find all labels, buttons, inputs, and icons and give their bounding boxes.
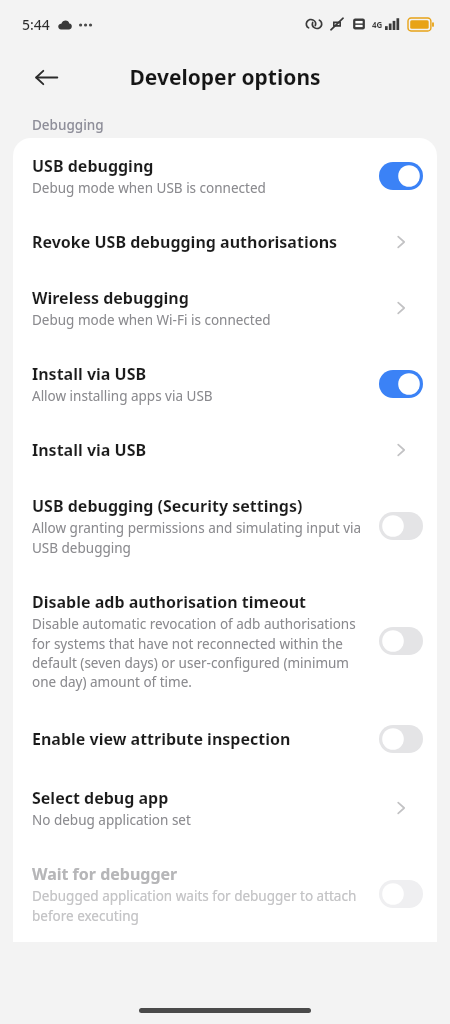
staticText: No debug application set <box>32 811 191 829</box>
staticText: Debug mode when Wi-Fi is connected <box>32 311 271 329</box>
staticText: 5:44 <box>22 15 50 34</box>
button[interactable]: Enable view attribute inspection <box>13 708 437 770</box>
staticText: Install via USB <box>32 363 147 385</box>
staticText: Allow installing apps via USB <box>32 387 213 405</box>
staticText: Debugging <box>32 116 104 134</box>
staticText: Debugged application waits for debugger … <box>32 887 369 925</box>
staticText: USB debugging <box>32 155 154 177</box>
staticText: Developer options <box>129 63 321 92</box>
other: Toggle off <box>379 627 423 655</box>
button[interactable]: Disable adb authorisation timeout <box>13 574 437 708</box>
staticText: Wait for debugger <box>32 863 178 885</box>
button[interactable]: Select debug app <box>13 770 437 846</box>
other: Toggle off <box>379 725 423 753</box>
staticText: Disable adb authorisation timeout <box>32 591 307 613</box>
staticText: Debug mode when USB is connected <box>32 179 266 197</box>
staticText: Revoke USB debugging authorisations <box>32 231 338 253</box>
button[interactable]: Back <box>22 53 70 101</box>
staticText: Enable view attribute inspection <box>32 728 291 750</box>
button[interactable]: USB debugging <box>13 138 437 214</box>
staticText: USB debugging (Security settings) <box>32 495 303 517</box>
staticText: Wireless debugging <box>32 287 189 309</box>
staticText: Disable automatic revocation of adb auth… <box>32 615 369 691</box>
staticText: Select debug app <box>32 787 169 809</box>
staticText: Allow granting permissions and simulatin… <box>32 519 369 557</box>
button[interactable]: Install via USB <box>13 346 437 422</box>
button[interactable]: Install via USB <box>13 422 437 478</box>
other: Toggle on <box>379 162 423 190</box>
staticText: Install via USB <box>32 439 147 461</box>
staticText: 4G <box>372 19 383 30</box>
other: Toggle off <box>379 512 423 540</box>
other: Toggle on <box>379 370 423 398</box>
button[interactable]: Revoke USB debugging authorisations <box>13 214 437 270</box>
button[interactable]: Wireless debugging <box>13 270 437 346</box>
button[interactable]: USB debugging (Security settings) <box>13 478 437 574</box>
button[interactable]: Wait for debugger <box>13 846 437 942</box>
other: Toggle off <box>379 880 423 908</box>
